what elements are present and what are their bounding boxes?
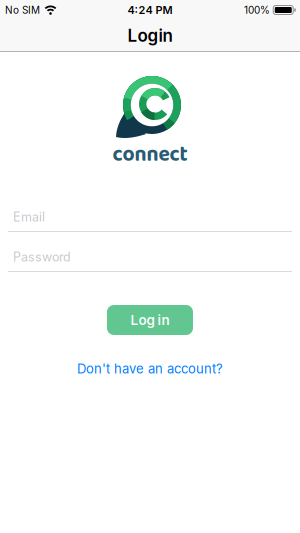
staticText: 4:24 PM [127, 3, 172, 17]
textField[interactable]: Email [13, 202, 300, 232]
staticText: Email [13, 202, 72, 232]
button[interactable]: Log in [107, 305, 193, 335]
staticText: 100% [244, 4, 270, 16]
staticText: Password [13, 249, 71, 264]
staticText: connect [112, 138, 187, 172]
staticText: Log in [130, 312, 169, 328]
button[interactable]: Don't have an account? [77, 361, 223, 377]
staticText: Password [13, 242, 117, 272]
staticText: Don't have an account? [77, 361, 223, 377]
staticText: Email [13, 209, 45, 224]
secureTextField[interactable]: Password [13, 242, 300, 272]
staticText: No SIM [5, 4, 40, 16]
staticText: Login [127, 25, 172, 46]
